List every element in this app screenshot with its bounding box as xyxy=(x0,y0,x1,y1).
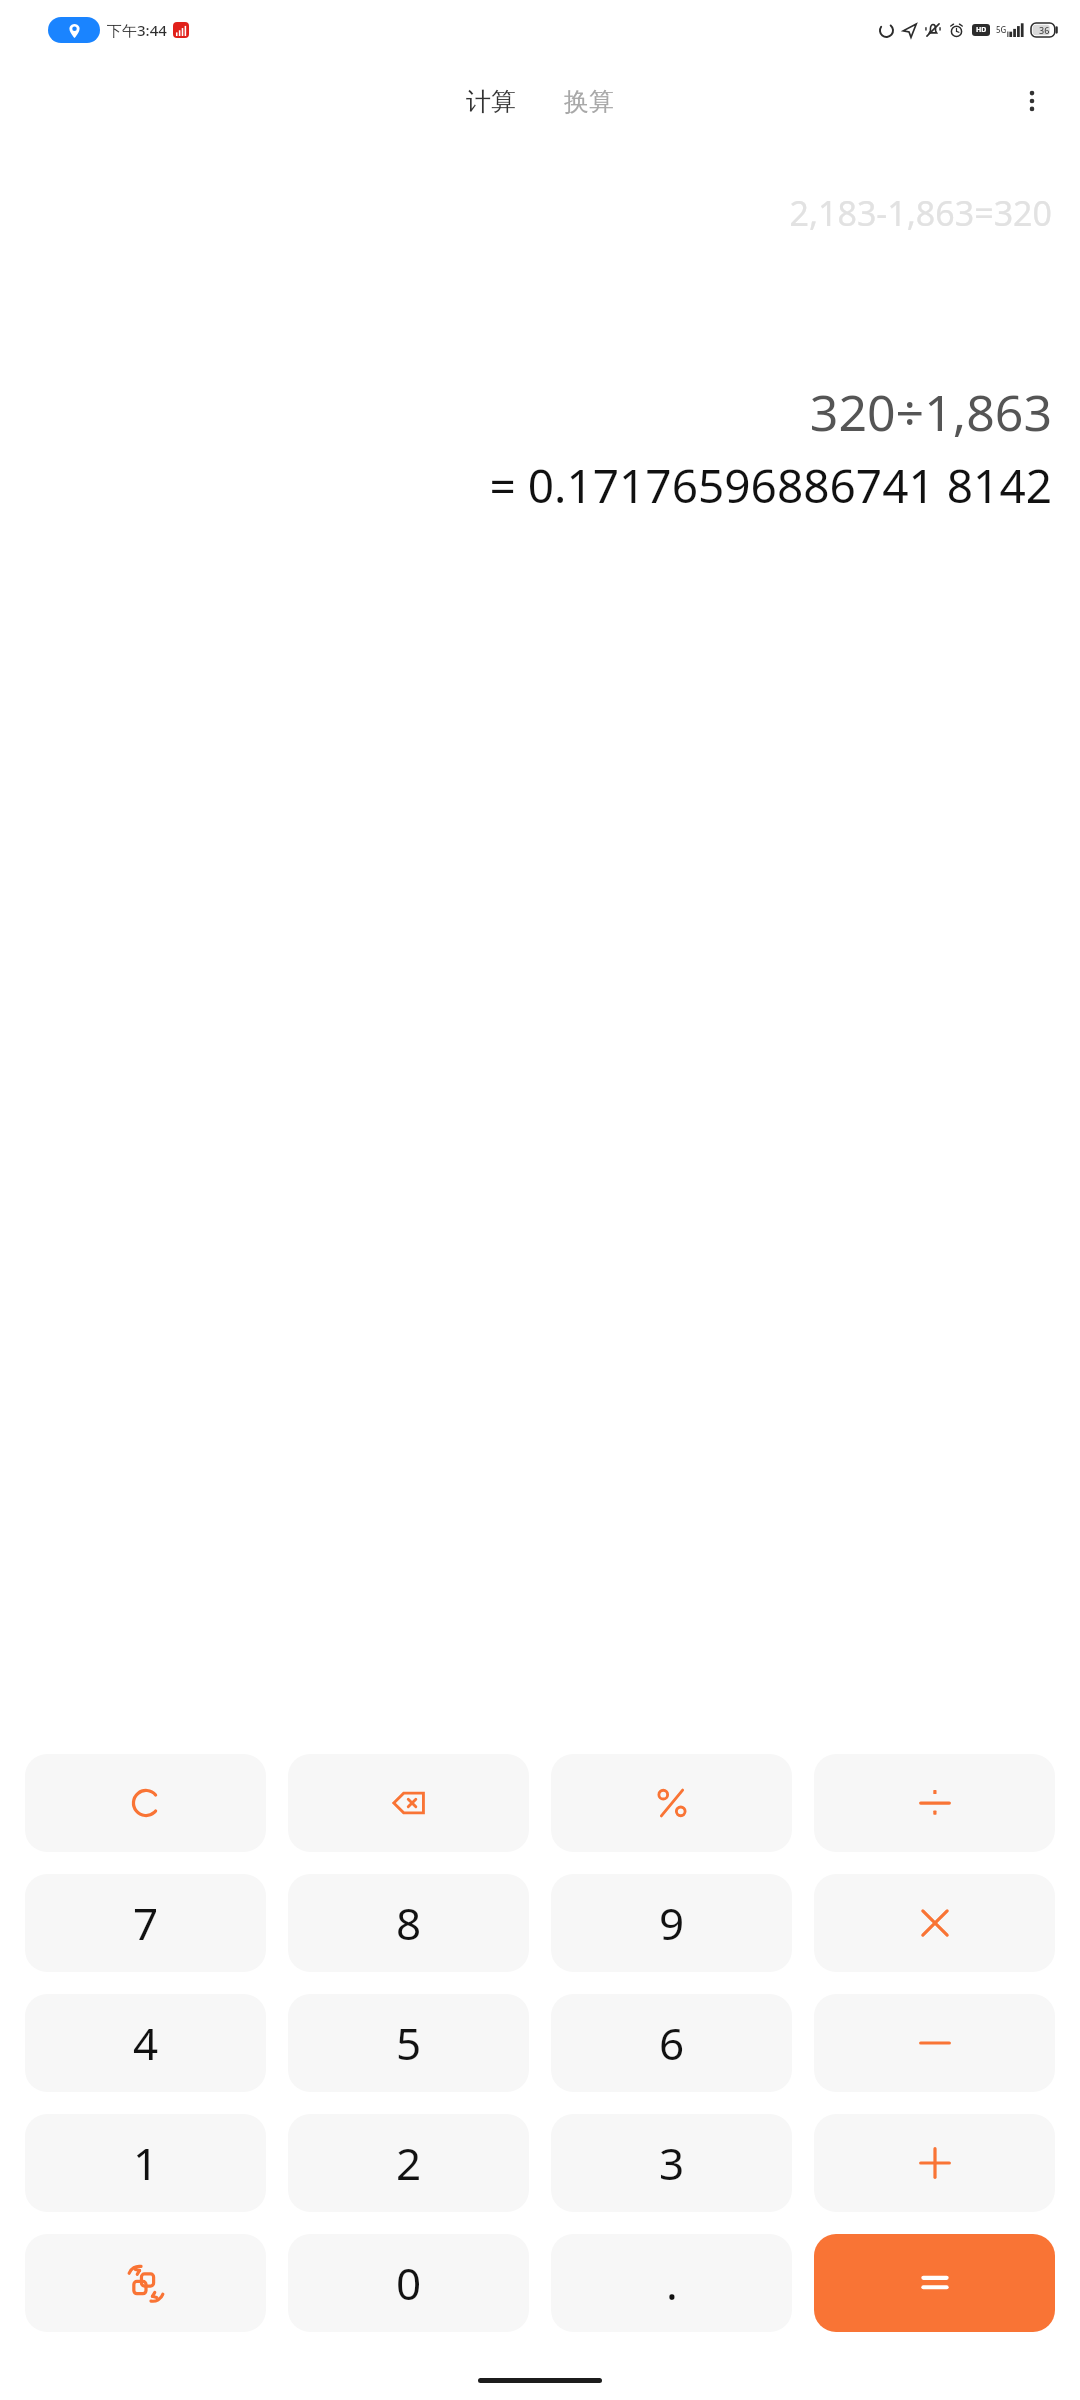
staticText: 5G xyxy=(996,24,1007,35)
button[interactable]: 8 xyxy=(288,1874,529,1972)
staticText: 4 xyxy=(133,2013,159,2073)
button[interactable]: Plus xyxy=(814,2114,1055,2212)
button[interactable]: Equals xyxy=(814,2234,1055,2332)
staticText: 320÷1,863 xyxy=(809,378,1052,446)
button[interactable]: 2 xyxy=(288,2114,529,2212)
button[interactable]: 3 xyxy=(551,2114,792,2212)
button[interactable]: Backspace xyxy=(288,1754,529,1852)
button[interactable]: Clear xyxy=(25,1754,266,1852)
button[interactable]: 4 xyxy=(25,1994,266,2092)
button[interactable]: Minus xyxy=(814,1994,1055,2092)
button[interactable]: 计算 xyxy=(456,80,526,123)
staticText: . xyxy=(666,2253,678,2313)
button[interactable]: Convert xyxy=(25,2234,266,2332)
staticText: HD xyxy=(976,25,987,35)
staticText: 7 xyxy=(133,1893,159,1953)
button[interactable]: 7 xyxy=(25,1874,266,1972)
staticText: 下午3:44 xyxy=(107,20,167,40)
staticText: 2 xyxy=(396,2133,422,2193)
button[interactable]: Divide xyxy=(814,1754,1055,1852)
staticText: 3 xyxy=(659,2133,685,2193)
staticText: 0 xyxy=(396,2253,422,2313)
staticText: = 0.17176596886741 8142 xyxy=(489,454,1052,517)
button[interactable]: Percent xyxy=(551,1754,792,1852)
staticText: 6 xyxy=(659,2013,685,2073)
button[interactable]: 6 xyxy=(551,1994,792,2092)
button[interactable]: 9 xyxy=(551,1874,792,1972)
button[interactable]: More options xyxy=(1004,73,1060,129)
button[interactable]: . xyxy=(551,2234,792,2332)
button[interactable]: 5 xyxy=(288,1994,529,2092)
staticText: 2,183-1,863=320 xyxy=(789,190,1052,236)
button[interactable]: 1 xyxy=(25,2114,266,2212)
staticText: 换算 xyxy=(564,86,614,117)
button[interactable]: 0 xyxy=(288,2234,529,2332)
staticText: 1 xyxy=(133,2133,159,2193)
staticText: 8 xyxy=(396,1893,422,1953)
button[interactable]: 换算 xyxy=(554,80,624,123)
staticText: 计算 xyxy=(466,86,516,117)
staticText: 9 xyxy=(659,1893,685,1953)
staticText: 36 xyxy=(1039,24,1050,36)
staticText: 5 xyxy=(396,2013,422,2073)
button[interactable]: Multiply xyxy=(814,1874,1055,1972)
